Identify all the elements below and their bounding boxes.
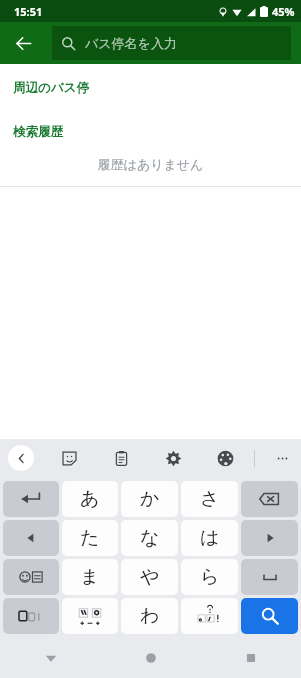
button[interactable]: Previous [8,445,34,471]
button[interactable]: た [62,520,118,556]
button[interactable]: Clipboard [108,445,134,471]
staticText: 履歴はありません [0,156,301,172]
staticText: あ [80,487,100,511]
button[interactable]: Key [62,598,118,634]
staticText: ら [200,565,220,589]
button[interactable]: 周辺のバス停 [13,80,89,96]
button[interactable]: Back [6,26,40,60]
staticText: 15:51 [14,4,43,19]
button[interactable]: Key [3,598,59,634]
button[interactable]: Key [3,559,59,595]
button[interactable]: Theme [212,445,238,471]
button[interactable]: や [121,559,178,595]
button[interactable]: な [121,520,178,556]
button[interactable]: わ [121,598,178,634]
staticText: ま [80,565,100,589]
staticText: さ [200,487,220,511]
button[interactable]: Key [3,481,59,517]
button[interactable]: Key [3,520,59,556]
button[interactable]: は [181,520,238,556]
button[interactable]: Back [0,638,101,678]
button[interactable]: Key [241,598,298,634]
staticText: た [80,526,100,550]
button[interactable]: 検索履歴 [13,124,63,140]
button[interactable]: Stickers [56,445,82,471]
button[interactable]: Recent apps [201,638,301,678]
staticText: 45% [272,4,295,19]
button[interactable]: さ [181,481,238,517]
button[interactable]: Key [241,520,298,556]
staticText: わ [140,604,160,628]
staticText: か [140,487,160,511]
staticText: な [140,526,160,550]
button[interactable]: Key [181,598,238,634]
button[interactable]: ら [181,559,238,595]
button[interactable]: Key [241,481,298,517]
staticText: や [140,565,160,589]
staticText: は [200,526,220,550]
button[interactable]: More [271,445,293,471]
button[interactable]: Key [241,559,298,595]
button[interactable]: Home [101,638,201,678]
button[interactable]: あ [62,481,118,517]
button[interactable]: か [121,481,178,517]
button[interactable]: バス停名を入力 [52,26,291,60]
button[interactable]: ま [62,559,118,595]
button[interactable]: Settings [160,445,186,471]
staticText: バス停名を入力 [85,35,177,51]
